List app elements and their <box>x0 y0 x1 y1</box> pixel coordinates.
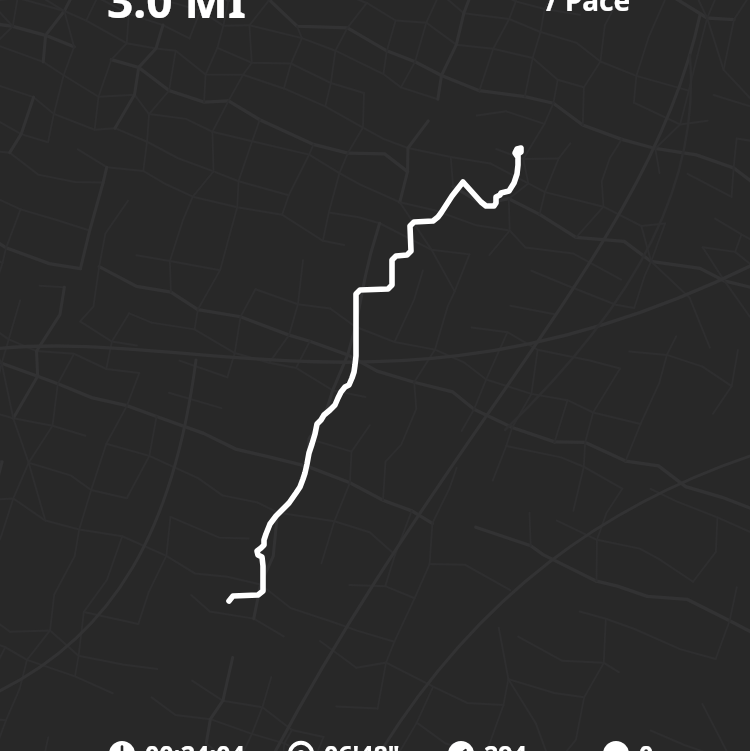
staticText: 3.0 MI <box>107 0 246 32</box>
button[interactable]: Heart rate <box>603 734 654 751</box>
button[interactable]: / Pace <box>546 0 631 19</box>
button[interactable]: Calories <box>448 734 527 751</box>
staticText: / Pace <box>546 0 631 19</box>
staticText: 0 <box>639 737 654 751</box>
staticText: 294 <box>484 737 527 751</box>
staticText: 06'48" <box>324 737 400 751</box>
button[interactable]: Average pace <box>288 734 400 751</box>
button[interactable]: Duration <box>109 734 245 751</box>
staticText: 00:24:04 <box>145 737 245 751</box>
button[interactable]: 3.0 MI <box>107 0 246 32</box>
